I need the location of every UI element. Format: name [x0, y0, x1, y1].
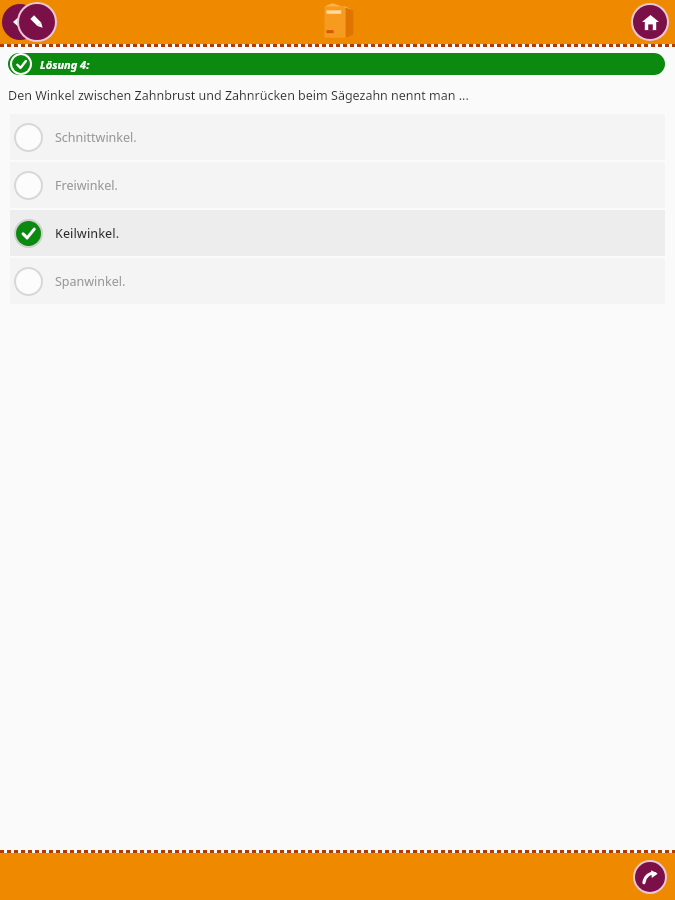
- staticText: Freiwinkel.: [55, 177, 118, 194]
- staticText: Keilwinkel.: [55, 225, 120, 242]
- staticText: Lösung 4:: [40, 57, 90, 72]
- button[interactable]: Schnittwinkel.: [10, 114, 665, 160]
- staticText: Spanwinkel.: [55, 273, 126, 290]
- button[interactable]: Spanwinkel.: [10, 258, 665, 304]
- button[interactable]: Edit: [19, 4, 55, 40]
- button[interactable]: Logo: [321, 2, 355, 40]
- button[interactable]: Lösung 4:: [8, 53, 665, 75]
- button[interactable]: Next: [635, 862, 665, 892]
- staticText: Schnittwinkel.: [55, 129, 137, 146]
- button[interactable]: Freiwinkel.: [10, 162, 665, 208]
- button[interactable]: Back: [2, 4, 38, 40]
- button[interactable]: Home: [633, 5, 667, 39]
- button[interactable]: Keilwinkel.: [10, 210, 665, 256]
- staticText: Den Winkel zwischen Zahnbrust und Zahnrü…: [8, 87, 469, 104]
